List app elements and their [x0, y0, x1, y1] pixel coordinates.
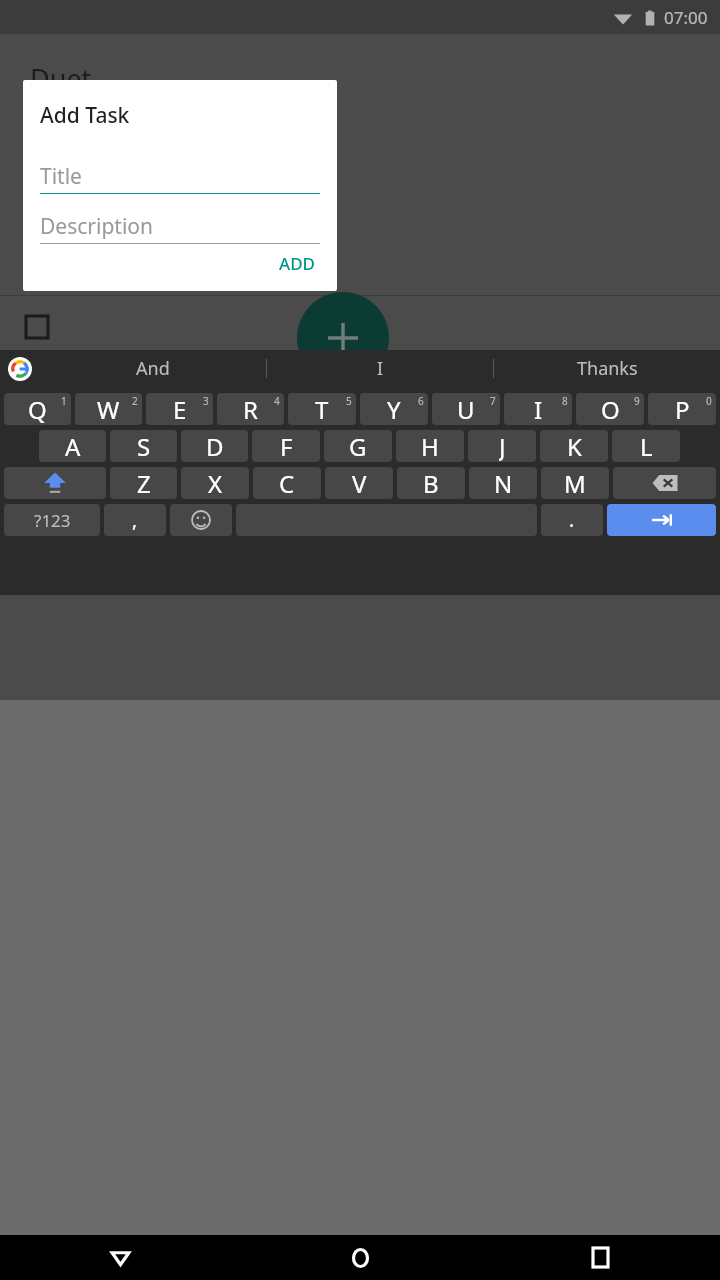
- button[interactable]: B: [397, 467, 465, 499]
- button[interactable]: U: [432, 393, 500, 425]
- staticText: ADD: [279, 252, 315, 275]
- button[interactable]: Thanks: [494, 350, 720, 387]
- staticText: 8: [562, 394, 568, 408]
- staticText: I: [377, 356, 384, 381]
- button[interactable]: .: [541, 504, 603, 536]
- staticText: J: [499, 430, 506, 462]
- staticText: N: [494, 467, 513, 499]
- button[interactable]: ?123: [4, 504, 100, 536]
- staticText: V: [352, 467, 367, 499]
- staticText: T: [315, 393, 329, 425]
- staticText: U: [457, 393, 475, 425]
- button[interactable]: O: [576, 393, 644, 425]
- button[interactable]: D: [181, 430, 248, 462]
- button[interactable]: Q: [4, 393, 71, 425]
- button[interactable]: N: [469, 467, 537, 499]
- button[interactable]: F: [252, 430, 320, 462]
- button[interactable]: R: [217, 393, 284, 425]
- button[interactable]: Recents: [480, 1235, 720, 1280]
- staticText: M: [564, 467, 586, 499]
- button[interactable]: Emoji: [170, 504, 232, 536]
- button[interactable]: Home: [240, 1235, 480, 1280]
- staticText: .: [569, 507, 575, 533]
- staticText: C: [279, 467, 295, 499]
- button[interactable]: ,: [104, 504, 166, 536]
- staticText: Duet: [30, 60, 92, 97]
- button[interactable]: Shift: [4, 467, 106, 499]
- button[interactable]: X: [181, 467, 249, 499]
- staticText: And: [136, 356, 170, 381]
- button[interactable]: Title: [40, 162, 320, 194]
- staticText: A: [65, 430, 81, 462]
- staticText: 6: [418, 394, 424, 408]
- staticText: S: [137, 430, 151, 462]
- button[interactable]: V: [325, 467, 393, 499]
- button[interactable]: P: [648, 393, 716, 425]
- button[interactable]: G: [324, 430, 392, 462]
- button[interactable]: ADD: [267, 244, 327, 283]
- staticText: 7: [490, 394, 496, 408]
- staticText: 4: [274, 394, 280, 408]
- staticText: Add Task: [40, 101, 130, 130]
- staticText: 5: [346, 394, 352, 408]
- staticText: Z: [137, 467, 151, 499]
- button[interactable]: H: [396, 430, 464, 462]
- staticText: F: [280, 430, 293, 462]
- staticText: P: [28, 141, 44, 176]
- button[interactable]: And: [40, 350, 266, 387]
- staticText: Description: [40, 212, 154, 241]
- staticText: 2: [132, 394, 138, 408]
- button[interactable]: Enter: [607, 504, 716, 536]
- staticText: ?123: [34, 509, 71, 532]
- button[interactable]: I: [267, 350, 493, 387]
- staticText: D: [28, 186, 42, 211]
- button[interactable]: Add task: [297, 292, 389, 384]
- staticText: K: [567, 430, 582, 462]
- button[interactable]: J: [468, 430, 536, 462]
- button[interactable]: W: [75, 393, 142, 425]
- staticText: W: [97, 393, 120, 425]
- staticText: I: [534, 393, 543, 425]
- staticText: B: [423, 467, 439, 499]
- staticText: Q: [28, 393, 47, 425]
- staticText: H: [421, 430, 439, 462]
- staticText: ,: [132, 507, 138, 533]
- staticText: D: [206, 430, 224, 462]
- button[interactable]: C: [253, 467, 321, 499]
- button[interactable]: I: [504, 393, 572, 425]
- button[interactable]: A: [39, 430, 106, 462]
- staticText: R: [243, 393, 258, 425]
- staticText: X: [208, 467, 223, 499]
- staticText: 3: [203, 394, 209, 408]
- button[interactable]: K: [540, 430, 608, 462]
- staticText: 1: [61, 394, 67, 408]
- staticText: Y: [387, 393, 401, 425]
- staticText: L: [640, 430, 653, 462]
- button[interactable]: M: [541, 467, 609, 499]
- button[interactable]: Z: [110, 467, 177, 499]
- staticText: O: [601, 393, 620, 425]
- button[interactable]: Y: [360, 393, 428, 425]
- button[interactable]: Google: [8, 357, 32, 381]
- staticText: E: [173, 393, 187, 425]
- staticText: 0: [706, 394, 712, 408]
- button[interactable]: Back: [0, 1235, 240, 1280]
- staticText: P: [675, 393, 690, 425]
- button[interactable]: T: [288, 393, 356, 425]
- staticText: G: [349, 430, 367, 462]
- button[interactable]: S: [110, 430, 177, 462]
- staticText: Title: [40, 162, 82, 191]
- staticText: 9: [634, 394, 640, 408]
- staticText: Thanks: [577, 356, 638, 381]
- staticText: 07:00: [664, 6, 708, 29]
- button[interactable]: Backspace: [613, 467, 716, 499]
- button[interactable]: E: [146, 393, 213, 425]
- button[interactable]: L: [612, 430, 680, 462]
- button[interactable]: Description: [40, 212, 320, 244]
